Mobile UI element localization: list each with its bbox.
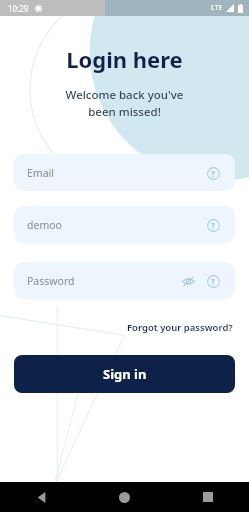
- button[interactable]: Home: [83, 482, 166, 512]
- staticText: LTE: [211, 3, 223, 13]
- button[interactable]: Toggle password visibility: [179, 272, 197, 290]
- staticText: Sign in: [103, 365, 147, 383]
- staticText: ?: [211, 220, 215, 231]
- button[interactable]: Sign in: [14, 355, 235, 393]
- button[interactable]: Help: [204, 164, 222, 182]
- staticText: Password: [27, 274, 179, 288]
- staticText: Welcome back you've been missed!: [14, 87, 235, 119]
- staticText: Login here: [14, 44, 235, 74]
- button[interactable]: Help: [204, 216, 222, 234]
- staticText: 10:29: [8, 3, 29, 14]
- button[interactable]: Back: [0, 482, 83, 512]
- button[interactable]: Password: [14, 262, 235, 299]
- button[interactable]: Email: [14, 154, 235, 191]
- staticText: demoo: [27, 218, 204, 232]
- button[interactable]: demoo: [14, 206, 235, 243]
- staticText: ?: [211, 168, 215, 179]
- button[interactable]: Recent apps: [166, 482, 249, 512]
- button[interactable]: Help: [204, 272, 222, 290]
- staticText: ?: [211, 276, 215, 287]
- button[interactable]: Forgot your password?: [125, 319, 235, 336]
- staticText: Email: [27, 166, 204, 180]
- staticText: Forgot your password?: [127, 321, 233, 334]
